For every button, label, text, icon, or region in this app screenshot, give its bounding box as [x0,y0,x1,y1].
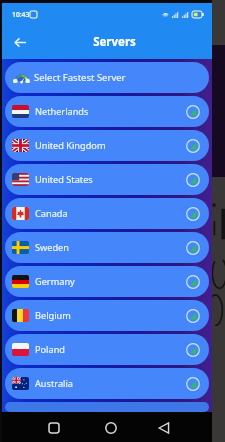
staticText: United States [35,173,93,186]
staticText: Netherlands [35,105,89,118]
staticText: Select Fastest Server [34,71,126,84]
button[interactable]: Australia [5,368,209,399]
button[interactable]: United States [5,164,209,195]
button[interactable]: Back [8,30,32,54]
button[interactable]: Netherlands [5,96,209,127]
staticText: 10:43 [12,10,30,19]
button[interactable]: Recents [43,417,64,438]
button[interactable]: Sweden [5,232,209,263]
staticText: United Kingdom [35,139,106,152]
button[interactable]: Canada [5,198,209,229]
button[interactable]: United Kingdom [5,130,209,161]
staticText: Belgium [35,309,71,322]
staticText: Australia [35,377,73,390]
button[interactable]: Home [100,417,121,438]
staticText: Canada [35,207,68,220]
button[interactable]: Select Fastest Server [5,62,209,93]
staticText: Servers [93,34,136,50]
staticText: Sweden [35,241,69,254]
button[interactable]: Back [153,417,174,438]
button[interactable]: Belgium [5,300,209,331]
button[interactable]: Germany [5,266,209,297]
staticText: Germany [35,275,75,288]
button[interactable]: Poland [5,334,209,365]
staticText: Poland [35,343,65,356]
